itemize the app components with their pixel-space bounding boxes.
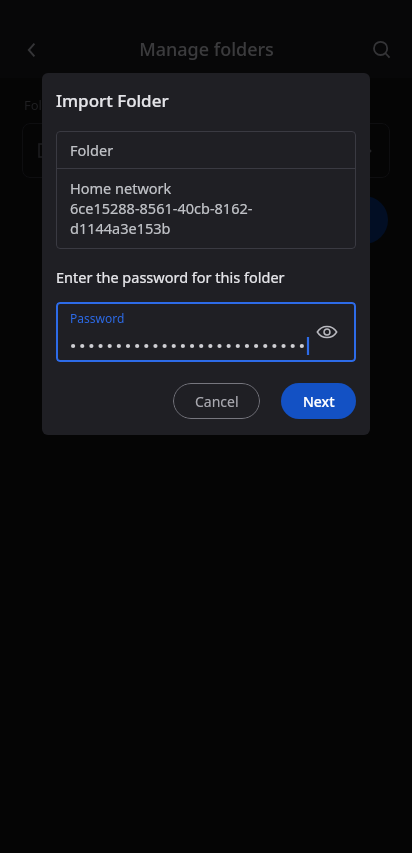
button[interactable]: Password: [56, 302, 356, 362]
button[interactable]: Cancel: [173, 383, 260, 419]
staticText: Next: [303, 392, 335, 411]
staticText: 6ce15288-8561-40cb-8162-: [70, 198, 253, 218]
button[interactable]: Search: [362, 30, 402, 70]
button[interactable]: Add folder: [340, 196, 388, 244]
staticText: Enter the password for this folder: [56, 267, 285, 287]
button[interactable]: Next: [281, 383, 356, 419]
staticText: Folders: [24, 96, 69, 114]
staticText: Home network: [70, 178, 172, 198]
button[interactable]: [22, 123, 390, 178]
button[interactable]: Back: [12, 30, 52, 70]
staticText: Manage folders: [139, 37, 274, 62]
staticText: Password: [70, 310, 125, 326]
staticText: Cancel: [195, 392, 239, 411]
button[interactable]: Show password: [310, 315, 344, 349]
staticText: Folder: [70, 140, 114, 160]
staticText: Import Folder: [56, 89, 169, 112]
staticText: d1144a3e153b: [70, 218, 171, 238]
